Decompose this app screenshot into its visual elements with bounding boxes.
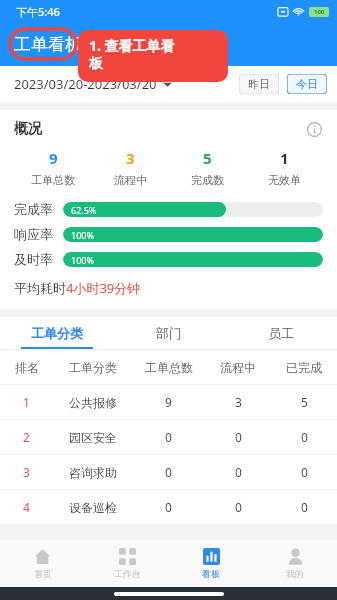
button[interactable]: 看板	[169, 540, 253, 587]
staticText: 看板	[202, 568, 220, 579]
staticText: 已完成	[286, 360, 322, 375]
staticText: 工作台	[114, 568, 141, 579]
staticText: 4	[23, 499, 30, 515]
staticText: 100%	[71, 254, 94, 266]
staticText: 1	[280, 148, 289, 168]
button[interactable]: 5	[169, 148, 246, 187]
staticText: 设备巡检	[69, 500, 117, 515]
staticText: 公共报修	[69, 395, 117, 410]
button[interactable]: 部门	[113, 317, 225, 349]
staticText: 1. 查看工单看	[89, 36, 175, 55]
staticText: 今日	[296, 77, 318, 91]
staticText: 5	[203, 148, 212, 168]
staticText: 4小时39分钟	[66, 279, 141, 297]
staticText: 0	[165, 499, 172, 515]
staticText: 0	[301, 429, 308, 445]
staticText: 完成率	[14, 201, 53, 217]
staticText: 2	[23, 429, 30, 445]
staticText: 0	[301, 464, 308, 480]
staticText: 3	[23, 464, 30, 480]
button[interactable]: 今日	[287, 74, 327, 94]
button[interactable]: 3	[0, 455, 337, 489]
staticText: 0	[235, 429, 242, 445]
staticText: 首页	[34, 568, 52, 579]
staticText: 完成数	[191, 173, 224, 187]
staticText: 100	[314, 8, 325, 16]
staticText: 0	[165, 464, 172, 480]
button[interactable]: 排名	[0, 350, 337, 384]
staticText: 员工	[268, 325, 294, 341]
staticText: 昨日	[248, 77, 270, 91]
button[interactable]: 工作台	[85, 540, 169, 587]
staticText: 1	[23, 394, 30, 410]
staticText: 平均耗时	[14, 280, 66, 296]
staticText: 3	[235, 394, 242, 410]
staticText: 100%	[71, 229, 94, 241]
button[interactable]: 1	[246, 148, 323, 187]
staticText: 部门	[156, 325, 182, 341]
button[interactable]: Info	[305, 120, 323, 138]
staticText: 下午5:46	[16, 4, 60, 19]
button[interactable]: 3	[92, 148, 169, 187]
staticText: 板	[89, 55, 103, 73]
button[interactable]: 9	[14, 148, 92, 187]
staticText: 9	[165, 394, 172, 410]
staticText: 无效单	[268, 173, 301, 187]
staticText: 咨询求助	[69, 465, 117, 480]
staticText: 5	[301, 394, 308, 410]
button[interactable]: 2	[0, 420, 337, 454]
staticText: 及时率	[14, 251, 53, 267]
button[interactable]: 1	[0, 385, 337, 419]
button[interactable]: 我的	[253, 540, 337, 587]
staticText: 工单分类	[31, 325, 83, 341]
staticText: 0	[235, 499, 242, 515]
staticText: 园区安全	[69, 430, 117, 445]
staticText: 62.5%	[71, 204, 97, 216]
button[interactable]: 2023/03/20-2023/03/20	[14, 75, 172, 93]
staticText: 排名	[15, 360, 39, 375]
staticText: 我的	[286, 568, 304, 579]
button[interactable]: 员工	[225, 317, 337, 349]
staticText: 工单总数	[145, 360, 193, 375]
staticText: 2023/03/20-2023/03/20	[14, 75, 157, 93]
staticText: 流程中	[114, 173, 147, 187]
staticText: 工单分类	[69, 360, 117, 375]
staticText: 0	[235, 464, 242, 480]
staticText: 流程中	[220, 360, 256, 375]
staticText: 响应率	[14, 226, 53, 242]
button[interactable]: 4	[0, 490, 337, 524]
button[interactable]: 1. 查看工单看	[78, 30, 228, 82]
staticText: 0	[301, 499, 308, 515]
button[interactable]: 工单分类	[0, 317, 113, 349]
staticText: 0	[165, 429, 172, 445]
staticText: 9	[49, 148, 58, 168]
staticText: 工单总数	[31, 173, 75, 187]
staticText: 3	[126, 148, 135, 168]
button[interactable]: 首页	[0, 540, 85, 587]
staticText: 工单看板	[14, 34, 82, 55]
button[interactable]: 昨日	[239, 74, 279, 94]
staticText: 概况	[14, 120, 42, 138]
